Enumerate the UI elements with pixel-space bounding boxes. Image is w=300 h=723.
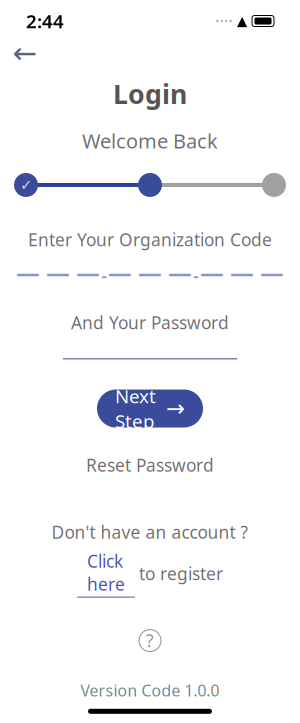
staticText: ✓: [20, 177, 32, 193]
staticText: ?: [146, 629, 154, 652]
staticText: Reset Password: [86, 453, 214, 476]
button[interactable]: Reset Password: [78, 449, 222, 480]
staticText: Don't have an account ?: [51, 520, 248, 543]
staticText: -: [193, 264, 198, 286]
staticText: Click here: [87, 549, 125, 595]
staticText: And Your Password: [71, 311, 229, 334]
staticText: Enter Your Organization Code: [28, 228, 272, 251]
staticText: ←: [12, 36, 37, 70]
staticText: Login: [113, 76, 187, 111]
staticText: Welcome Back: [82, 127, 218, 154]
staticText: -: [101, 264, 106, 286]
staticText: →: [166, 396, 185, 421]
button[interactable]: Help: [133, 624, 167, 658]
button[interactable]: Back: [8, 38, 42, 68]
staticText: to register: [139, 562, 223, 585]
button[interactable]: Next Step: [97, 389, 203, 427]
staticText: Next Step: [115, 384, 156, 433]
button[interactable]: Click here: [77, 549, 135, 597]
staticText: Version Code 1.0.0: [80, 680, 219, 701]
